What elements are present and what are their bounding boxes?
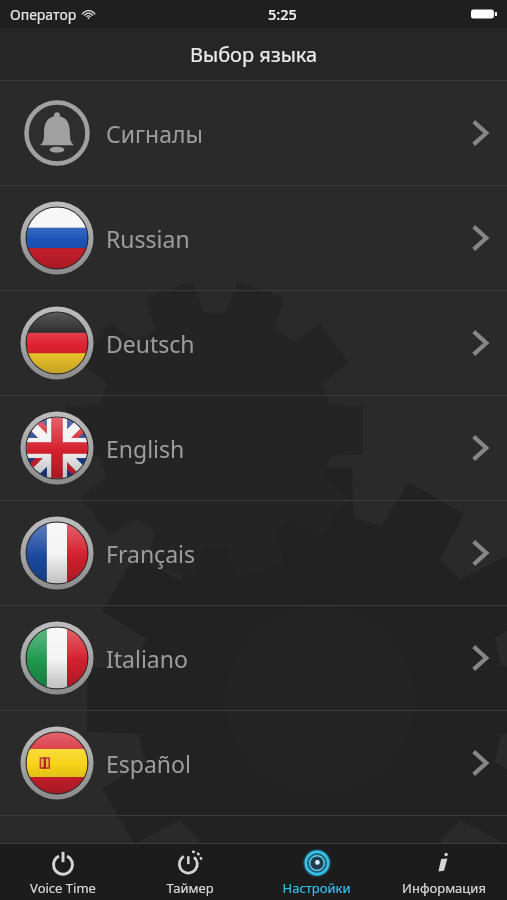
button[interactable]: Deutsch bbox=[0, 291, 507, 395]
button[interactable]: Настройки bbox=[253, 844, 380, 897]
staticText: Russian bbox=[106, 223, 190, 254]
button[interactable]: Таймер bbox=[126, 844, 253, 897]
button[interactable]: Español bbox=[0, 711, 507, 815]
button[interactable]: Сигналы bbox=[0, 81, 507, 185]
staticText: Сигналы bbox=[106, 118, 203, 149]
staticText: Voice Time bbox=[30, 879, 96, 897]
button[interactable]: Français bbox=[0, 501, 507, 605]
staticText: Español bbox=[106, 748, 191, 779]
staticText: Информация bbox=[402, 879, 486, 897]
staticText: English bbox=[106, 433, 185, 464]
button[interactable]: Информация bbox=[380, 844, 507, 897]
button[interactable]: Voice Time bbox=[0, 844, 126, 897]
staticText: Таймер bbox=[166, 879, 214, 897]
staticText: Français bbox=[106, 538, 195, 569]
button[interactable]: Russian bbox=[0, 186, 507, 290]
staticText: Deutsch bbox=[106, 328, 195, 359]
staticText: 5:25 bbox=[268, 4, 297, 24]
staticText: Настройки bbox=[282, 879, 351, 897]
staticText: Оператор bbox=[10, 5, 77, 24]
button[interactable]: English bbox=[0, 396, 507, 500]
staticText: Italiano bbox=[106, 643, 188, 674]
staticText: Выбор языка bbox=[190, 41, 318, 68]
button[interactable]: Italiano bbox=[0, 606, 507, 710]
